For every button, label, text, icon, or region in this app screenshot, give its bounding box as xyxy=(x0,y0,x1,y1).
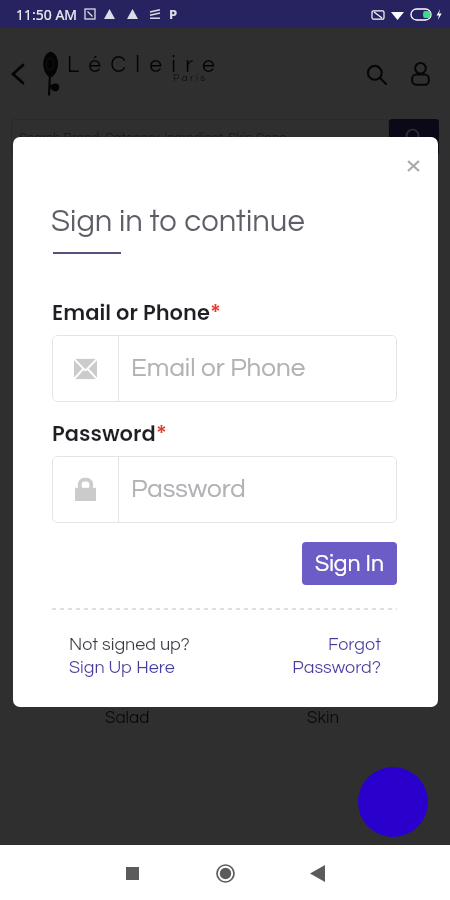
staticText: Body xyxy=(303,329,343,347)
staticText: Sign In xyxy=(315,552,384,576)
staticText: P xyxy=(169,5,178,23)
button[interactable]: Forgot xyxy=(292,635,381,677)
staticText: 11:50 AM xyxy=(16,5,78,24)
button[interactable]: Password xyxy=(52,456,397,523)
staticText: Password xyxy=(131,476,246,503)
staticText: Email or Phone xyxy=(131,355,306,382)
staticText: LéCleire xyxy=(67,53,224,77)
button[interactable]: Home xyxy=(208,856,242,890)
button[interactable]: Sign In xyxy=(302,542,397,585)
button[interactable]: Recents xyxy=(115,856,149,890)
staticText: Search Brand, Category, Ingredient, Skin… xyxy=(19,131,295,144)
button[interactable]: Back xyxy=(300,856,334,890)
staticText: Face xyxy=(108,519,147,537)
staticText: Salad xyxy=(105,709,150,727)
staticText: Paris xyxy=(173,73,208,83)
staticText: Not signed up? xyxy=(69,635,190,654)
staticText: Skin xyxy=(307,709,340,727)
button[interactable]: Account xyxy=(403,57,437,91)
staticText: Email or Phone xyxy=(52,298,210,327)
button[interactable]: Search xyxy=(359,57,393,91)
staticText: Hair xyxy=(111,329,143,347)
button[interactable]: Search Brand, Category, Ingredient, Skin… xyxy=(11,119,389,155)
button[interactable]: Back xyxy=(2,58,34,90)
staticText: Sign Up Here xyxy=(69,658,175,677)
staticText: Password xyxy=(52,419,156,448)
button[interactable]: Search xyxy=(389,119,439,155)
staticText: Sign in to continue xyxy=(51,206,305,238)
staticText: Forgot xyxy=(327,635,381,654)
staticText: Password? xyxy=(292,658,381,677)
staticText: Lips xyxy=(308,519,339,537)
button[interactable]: Not signed up? xyxy=(69,635,190,677)
staticText: * xyxy=(210,298,221,327)
button[interactable]: Close xyxy=(398,151,428,181)
button[interactable]: Email or Phone xyxy=(52,335,397,402)
button[interactable]: Chat xyxy=(358,767,428,837)
staticText: * xyxy=(156,419,167,448)
